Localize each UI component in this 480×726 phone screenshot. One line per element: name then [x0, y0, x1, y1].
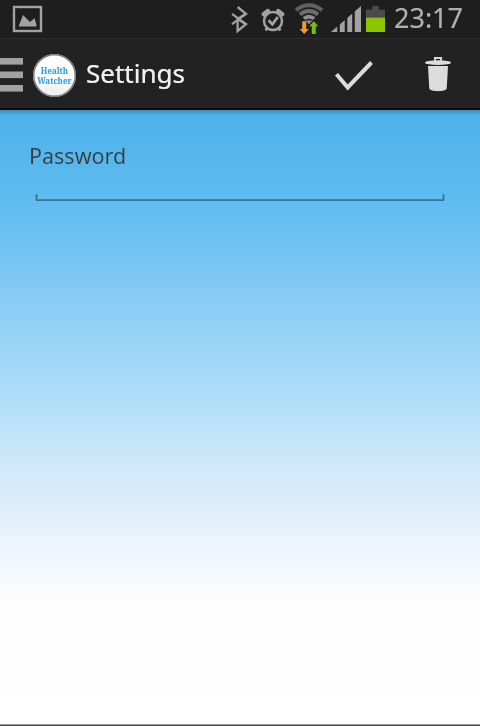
staticText: 23:17: [394, 0, 464, 36]
staticText: Settings: [86, 55, 185, 90]
staticText: Password: [29, 141, 127, 170]
staticText: Health Watcher: [37, 65, 72, 86]
button[interactable]: Open navigation drawer: [0, 39, 32, 110]
button[interactable]: Password input field: [34, 172, 446, 202]
button[interactable]: Delete: [402, 39, 474, 110]
button[interactable]: Save: [318, 39, 390, 110]
